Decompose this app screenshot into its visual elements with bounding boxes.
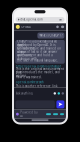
staticText: Powered by AI bbox=[20, 111, 37, 118]
staticText: chat.openai.com bbox=[20, 18, 42, 21]
staticText: write content and hold a dialogue with bbox=[17, 53, 52, 60]
staticText: Ask anything bbox=[16, 92, 33, 95]
button[interactable]: openai.com/research bbox=[16, 81, 44, 84]
staticText: What is ChatGPT? bbox=[39, 34, 62, 37]
button[interactable]: More bbox=[60, 113, 64, 115]
staticText: that introduces the model, and explains bbox=[16, 70, 60, 77]
button[interactable]: Tabs bbox=[53, 113, 58, 115]
staticText: This is the original announcement post bbox=[16, 67, 64, 74]
staticText: how it was trained. bbox=[16, 75, 42, 79]
staticText: ChatGPT is a conversational AI model bbox=[17, 40, 57, 47]
button[interactable]: https://openai.com/blog/chatgpt bbox=[16, 65, 61, 68]
staticText: OPENAI bbox=[21, 25, 31, 29]
staticText: developed by OpenAI. It is built on the bbox=[17, 43, 55, 50]
button[interactable]: Menu bbox=[61, 26, 64, 28]
staticText: https://openai.com/blog/chatgpt bbox=[16, 65, 61, 68]
staticText: This is another reference link. bbox=[16, 84, 58, 88]
button[interactable]: Bookmarks bbox=[46, 113, 51, 115]
staticText: aA bbox=[59, 18, 62, 21]
button[interactable]: Share bbox=[56, 26, 59, 28]
button[interactable]: Send bbox=[56, 100, 64, 108]
staticText: corpus of text so it can answer question… bbox=[17, 50, 57, 57]
button[interactable]: chat.openai.com bbox=[15, 17, 64, 22]
staticText: GPT architecture and trained on a large bbox=[17, 47, 61, 54]
staticText: openai.com/research bbox=[16, 80, 44, 84]
staticText: the user in natural language. bbox=[17, 59, 58, 62]
